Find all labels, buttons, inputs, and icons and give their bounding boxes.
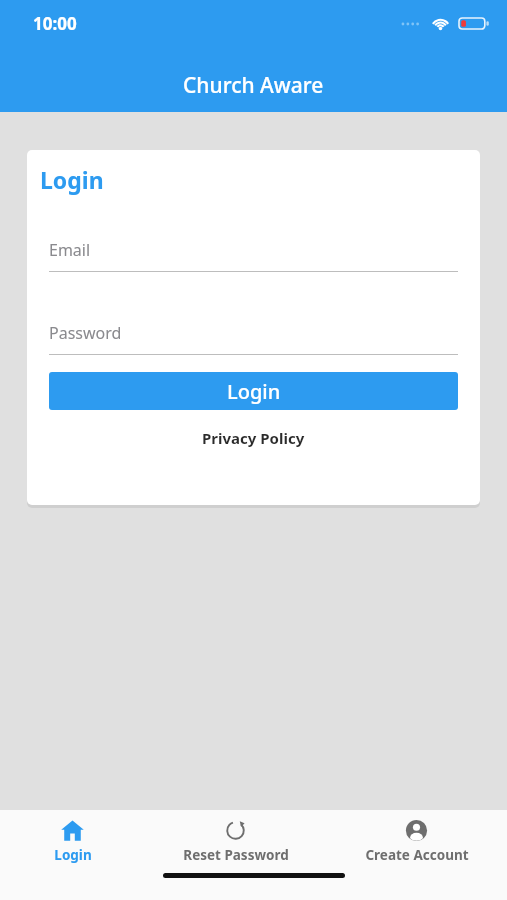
button[interactable]: Login (49, 372, 458, 410)
button[interactable]: Email (49, 239, 458, 272)
button[interactable]: Privacy Policy (27, 422, 480, 454)
staticText: Reset Password (183, 846, 289, 864)
staticText: Create Account (365, 846, 469, 864)
staticText: Login (227, 378, 281, 405)
staticText: Login (40, 164, 104, 195)
button[interactable]: Password (49, 322, 458, 355)
staticText: 10:00 (33, 12, 77, 35)
staticText: Privacy Policy (202, 428, 305, 448)
button[interactable]: Login (0, 819, 145, 864)
button[interactable]: Reset Password (145, 819, 326, 864)
staticText: Password (49, 322, 122, 344)
staticText: Email (49, 239, 91, 261)
staticText: Church Aware (183, 71, 324, 100)
button[interactable]: Create Account (326, 819, 507, 864)
staticText: Login (54, 846, 92, 864)
